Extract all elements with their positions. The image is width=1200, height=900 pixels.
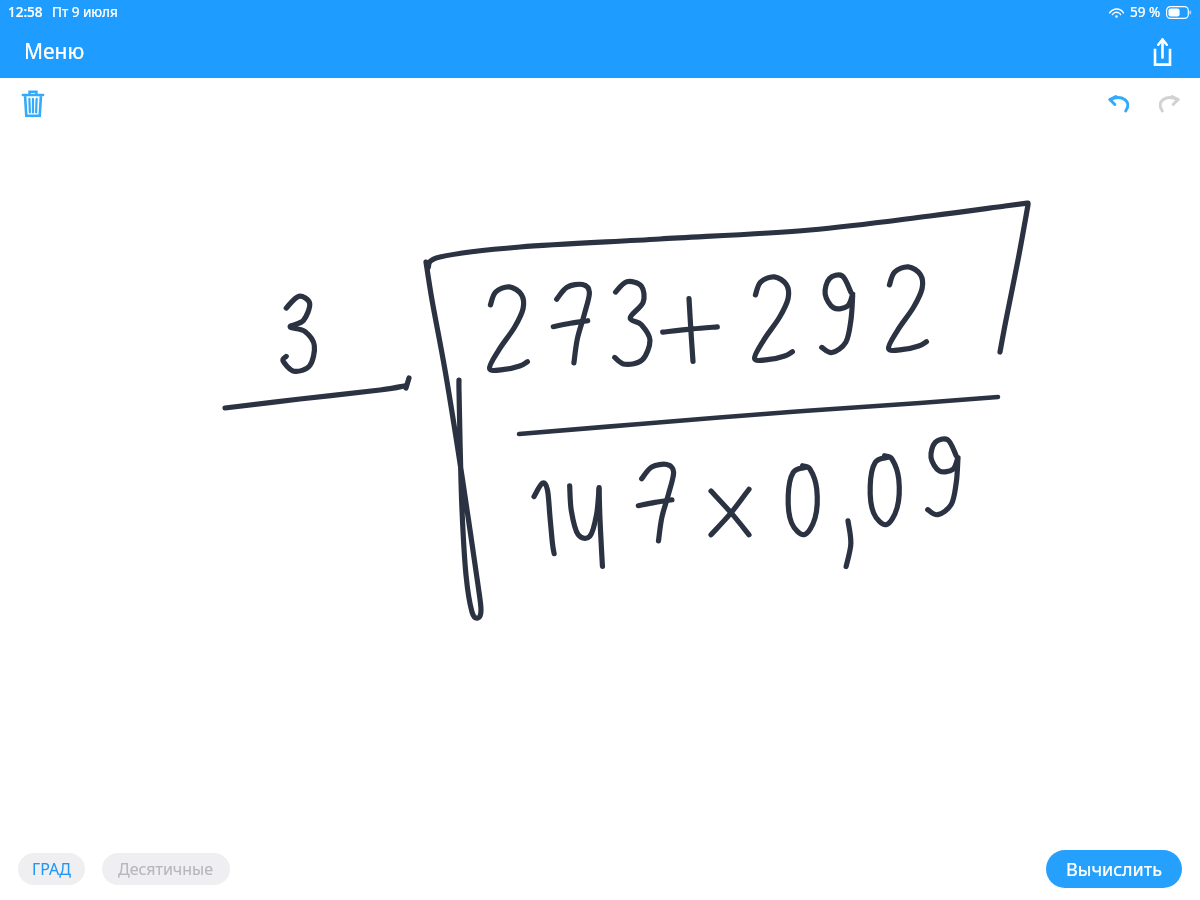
staticText: 12:58 <box>8 3 43 21</box>
staticText: Пт 9 июля <box>52 3 118 21</box>
button[interactable]: Delete <box>10 81 56 127</box>
staticText: Десятичные <box>118 858 214 880</box>
button[interactable]: ГРАД <box>18 853 85 885</box>
button[interactable]: Share <box>1140 30 1184 74</box>
staticText: ГРАД <box>32 858 71 880</box>
staticText: Меню <box>24 37 85 66</box>
button[interactable]: Redo <box>1144 80 1192 128</box>
button[interactable]: Меню <box>14 31 95 72</box>
staticText: 59 % <box>1130 3 1161 21</box>
staticText: Вычислить <box>1066 857 1162 882</box>
button[interactable]: Десятичные <box>102 853 230 885</box>
button[interactable]: Вычислить <box>1046 850 1182 888</box>
button[interactable]: Undo <box>1096 80 1144 128</box>
